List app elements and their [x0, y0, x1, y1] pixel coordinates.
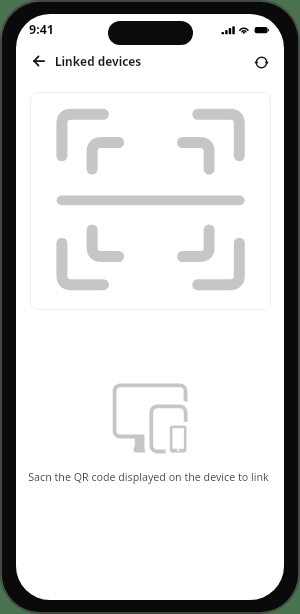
staticText: Linked devices [55, 53, 142, 69]
staticText: Sacn the QR code displayed on the device… [28, 470, 269, 485]
button[interactable]: Back [29, 51, 49, 71]
button[interactable]: Refresh [251, 52, 271, 72]
staticText: 9:41 [29, 21, 54, 38]
